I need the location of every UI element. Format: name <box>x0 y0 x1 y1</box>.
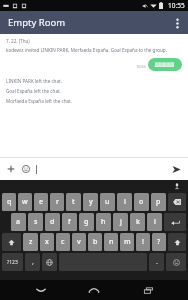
staticText: , <box>32 257 34 267</box>
button[interactable]: Period <box>149 253 164 271</box>
staticText: y <box>89 197 93 207</box>
staticText: e <box>39 197 44 207</box>
button[interactable]: y <box>83 193 98 211</box>
button[interactable]: g <box>79 213 94 231</box>
staticText: d <box>50 217 55 227</box>
button[interactable]: w <box>18 193 32 211</box>
staticText: 10:55 <box>168 1 185 10</box>
staticText: 7. 22. (Thu) <box>6 38 30 44</box>
button[interactable]: Send <box>168 161 184 177</box>
staticText: Morfaeda España left the chat. <box>6 98 72 104</box>
staticText: x <box>45 237 49 247</box>
button[interactable]: More options <box>166 12 188 34</box>
staticText: f <box>68 217 71 227</box>
button[interactable]: e <box>34 193 48 211</box>
staticText: j <box>120 217 122 227</box>
button[interactable]: m <box>120 233 134 251</box>
button[interactable]: k <box>130 213 145 231</box>
staticText: z <box>29 237 33 247</box>
button[interactable]: a <box>11 213 26 231</box>
button[interactable]: jjjjjjjjjjjjjjj <box>148 58 182 71</box>
staticText: kodewiz invited LINKIN PARK, Morfaeda Es… <box>6 47 167 53</box>
button[interactable]: ! <box>136 233 150 251</box>
button[interactable]: Enter <box>164 213 186 231</box>
button[interactable]: Emoji <box>166 253 186 271</box>
button[interactable]: ? <box>152 233 166 251</box>
button[interactable]: x <box>40 233 54 251</box>
button[interactable]: Backspace <box>168 193 186 211</box>
staticText: jjjjjjjjjjjjjjj <box>155 61 175 68</box>
staticText: i <box>124 197 126 207</box>
button[interactable]: Back <box>28 281 54 299</box>
button[interactable]: Voice input <box>172 181 182 191</box>
staticText: ? <box>157 237 161 247</box>
staticText: . <box>156 257 158 267</box>
button[interactable]: i <box>117 193 132 211</box>
staticText: q <box>7 197 12 207</box>
staticText: Goal España left the chat. <box>6 88 61 94</box>
button[interactable]: c <box>56 233 70 251</box>
button[interactable]: s <box>28 213 43 231</box>
button[interactable]: Recent apps <box>135 281 161 299</box>
button[interactable]: l <box>147 213 162 231</box>
button[interactable]: n <box>104 233 118 251</box>
button[interactable]: d <box>45 213 60 231</box>
button[interactable]: Emoji <box>19 162 33 176</box>
staticText: s <box>34 217 38 227</box>
staticText: p <box>156 197 161 207</box>
button[interactable]: r <box>50 193 64 211</box>
staticText: a <box>16 217 21 227</box>
button[interactable]: o <box>134 193 149 211</box>
button[interactable]: h <box>96 213 111 231</box>
staticText: h <box>101 217 106 227</box>
staticText: u <box>105 197 110 207</box>
staticText: Empty Room <box>8 16 66 29</box>
button[interactable]: Attach <box>4 162 18 176</box>
staticText: r <box>56 197 59 207</box>
button[interactable]: Shift <box>2 233 21 251</box>
staticText: ! <box>142 237 144 247</box>
staticText: w <box>22 197 28 207</box>
staticText: ?123 <box>7 259 18 266</box>
staticText: m <box>124 237 131 247</box>
button[interactable]: v <box>72 233 86 251</box>
staticText: n <box>109 237 114 247</box>
button[interactable]: u <box>100 193 115 211</box>
staticText: k <box>136 217 140 227</box>
staticText: c <box>61 237 65 247</box>
staticText: LINKIN PARK left the chat. <box>6 78 62 84</box>
staticText: v <box>77 237 81 247</box>
button[interactable]: z <box>23 233 38 251</box>
button[interactable]: Comma <box>25 253 40 271</box>
button[interactable]: Shift <box>168 233 186 251</box>
staticText: l <box>154 217 156 227</box>
button[interactable]: f <box>62 213 77 231</box>
button[interactable]: q <box>2 193 16 211</box>
staticText: o <box>139 197 144 207</box>
button[interactable]: j <box>113 213 128 231</box>
staticText: 10:55 <box>136 64 146 69</box>
button[interactable]: p <box>151 193 166 211</box>
button[interactable]: b <box>88 233 102 251</box>
button[interactable]: Symbols <box>2 253 23 271</box>
button[interactable]: Language <box>42 253 57 271</box>
button[interactable]: t <box>66 193 81 211</box>
button[interactable]: Home <box>81 281 107 299</box>
staticText: b <box>93 237 98 247</box>
staticText: g <box>84 217 89 227</box>
staticText: t <box>72 197 75 207</box>
